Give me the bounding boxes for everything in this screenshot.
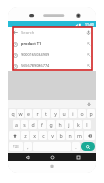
button[interactable]: product T1 bbox=[8, 38, 96, 49]
button[interactable]: v bbox=[48, 131, 56, 140]
staticText: d bbox=[31, 121, 35, 128]
staticText: e bbox=[27, 110, 30, 117]
button[interactable]: t bbox=[42, 109, 50, 118]
button[interactable]: q bbox=[9, 109, 16, 118]
button[interactable]: a bbox=[13, 120, 20, 129]
button[interactable]: 5656789086774 bbox=[8, 60, 96, 71]
button[interactable]: m bbox=[75, 131, 83, 140]
staticText: h bbox=[58, 121, 62, 128]
button[interactable]: Backspace bbox=[84, 131, 95, 140]
staticText: b bbox=[59, 132, 63, 139]
button[interactable]: r bbox=[33, 109, 41, 118]
staticText: l bbox=[86, 121, 88, 128]
staticText: product T1 bbox=[21, 41, 86, 46]
button[interactable]: . bbox=[72, 142, 80, 151]
button[interactable]: i bbox=[69, 109, 77, 118]
button[interactable]: p bbox=[87, 109, 95, 118]
staticText: x bbox=[33, 132, 36, 139]
button[interactable]: n bbox=[66, 131, 74, 140]
staticText: z bbox=[24, 132, 27, 139]
staticText: q bbox=[11, 110, 15, 117]
button[interactable]: Home bbox=[45, 153, 59, 161]
button[interactable]: k bbox=[74, 120, 82, 129]
button[interactable]: Back bbox=[12, 29, 19, 36]
button[interactable]: u bbox=[60, 109, 68, 118]
staticText: o bbox=[80, 110, 84, 117]
button[interactable]: b bbox=[57, 131, 65, 140]
button[interactable]: Voice input bbox=[86, 101, 92, 107]
button[interactable]: o bbox=[78, 109, 86, 118]
staticText: n bbox=[68, 132, 72, 139]
button[interactable]: j bbox=[65, 120, 73, 129]
button[interactable]: f bbox=[38, 120, 46, 129]
staticText: 9000165034909 bbox=[21, 52, 86, 57]
staticText: ?123 bbox=[13, 145, 19, 149]
staticText: s bbox=[23, 121, 26, 128]
button[interactable]: e bbox=[25, 109, 32, 118]
button[interactable]: Voice search bbox=[85, 29, 92, 36]
button[interactable]: z bbox=[21, 131, 29, 140]
staticText: k bbox=[77, 121, 80, 128]
staticText: c bbox=[42, 132, 45, 139]
button[interactable]: h bbox=[56, 120, 64, 129]
staticText: t bbox=[45, 110, 47, 117]
staticText: u bbox=[62, 110, 66, 117]
staticText: r bbox=[36, 110, 39, 117]
button[interactable]: Shift bbox=[9, 131, 20, 140]
button[interactable]: d bbox=[29, 120, 37, 129]
button[interactable]: s bbox=[21, 120, 28, 129]
button[interactable]: Back bbox=[8, 27, 96, 38]
button[interactable]: g bbox=[47, 120, 55, 129]
button[interactable]: , bbox=[24, 142, 32, 151]
button[interactable]: ?123 bbox=[9, 142, 23, 151]
staticText: g bbox=[49, 121, 53, 128]
button[interactable]: Search bbox=[81, 142, 95, 151]
button[interactable]: y bbox=[51, 109, 59, 118]
button[interactable]: Recents bbox=[71, 153, 85, 161]
staticText: m bbox=[77, 132, 82, 139]
staticText: f bbox=[41, 121, 43, 128]
staticText: 5656789086774 bbox=[21, 63, 86, 68]
button[interactable]: x bbox=[30, 131, 38, 140]
button[interactable]: Back bbox=[20, 153, 34, 161]
button[interactable]: 9000165034909 bbox=[8, 49, 96, 60]
staticText: p bbox=[89, 110, 93, 117]
staticText: . bbox=[75, 143, 77, 150]
staticText: Search bbox=[21, 30, 85, 36]
staticText: j bbox=[68, 121, 70, 128]
staticText: , bbox=[27, 143, 29, 150]
staticText: a bbox=[15, 121, 18, 128]
staticText: y bbox=[54, 110, 57, 117]
staticText: v bbox=[51, 132, 54, 139]
staticText: 11:40 bbox=[85, 22, 94, 27]
staticText: w bbox=[18, 110, 23, 117]
staticText: i bbox=[72, 110, 74, 117]
button[interactable]: w bbox=[17, 109, 24, 118]
button[interactable]: l bbox=[83, 120, 91, 129]
button[interactable]: c bbox=[39, 131, 47, 140]
